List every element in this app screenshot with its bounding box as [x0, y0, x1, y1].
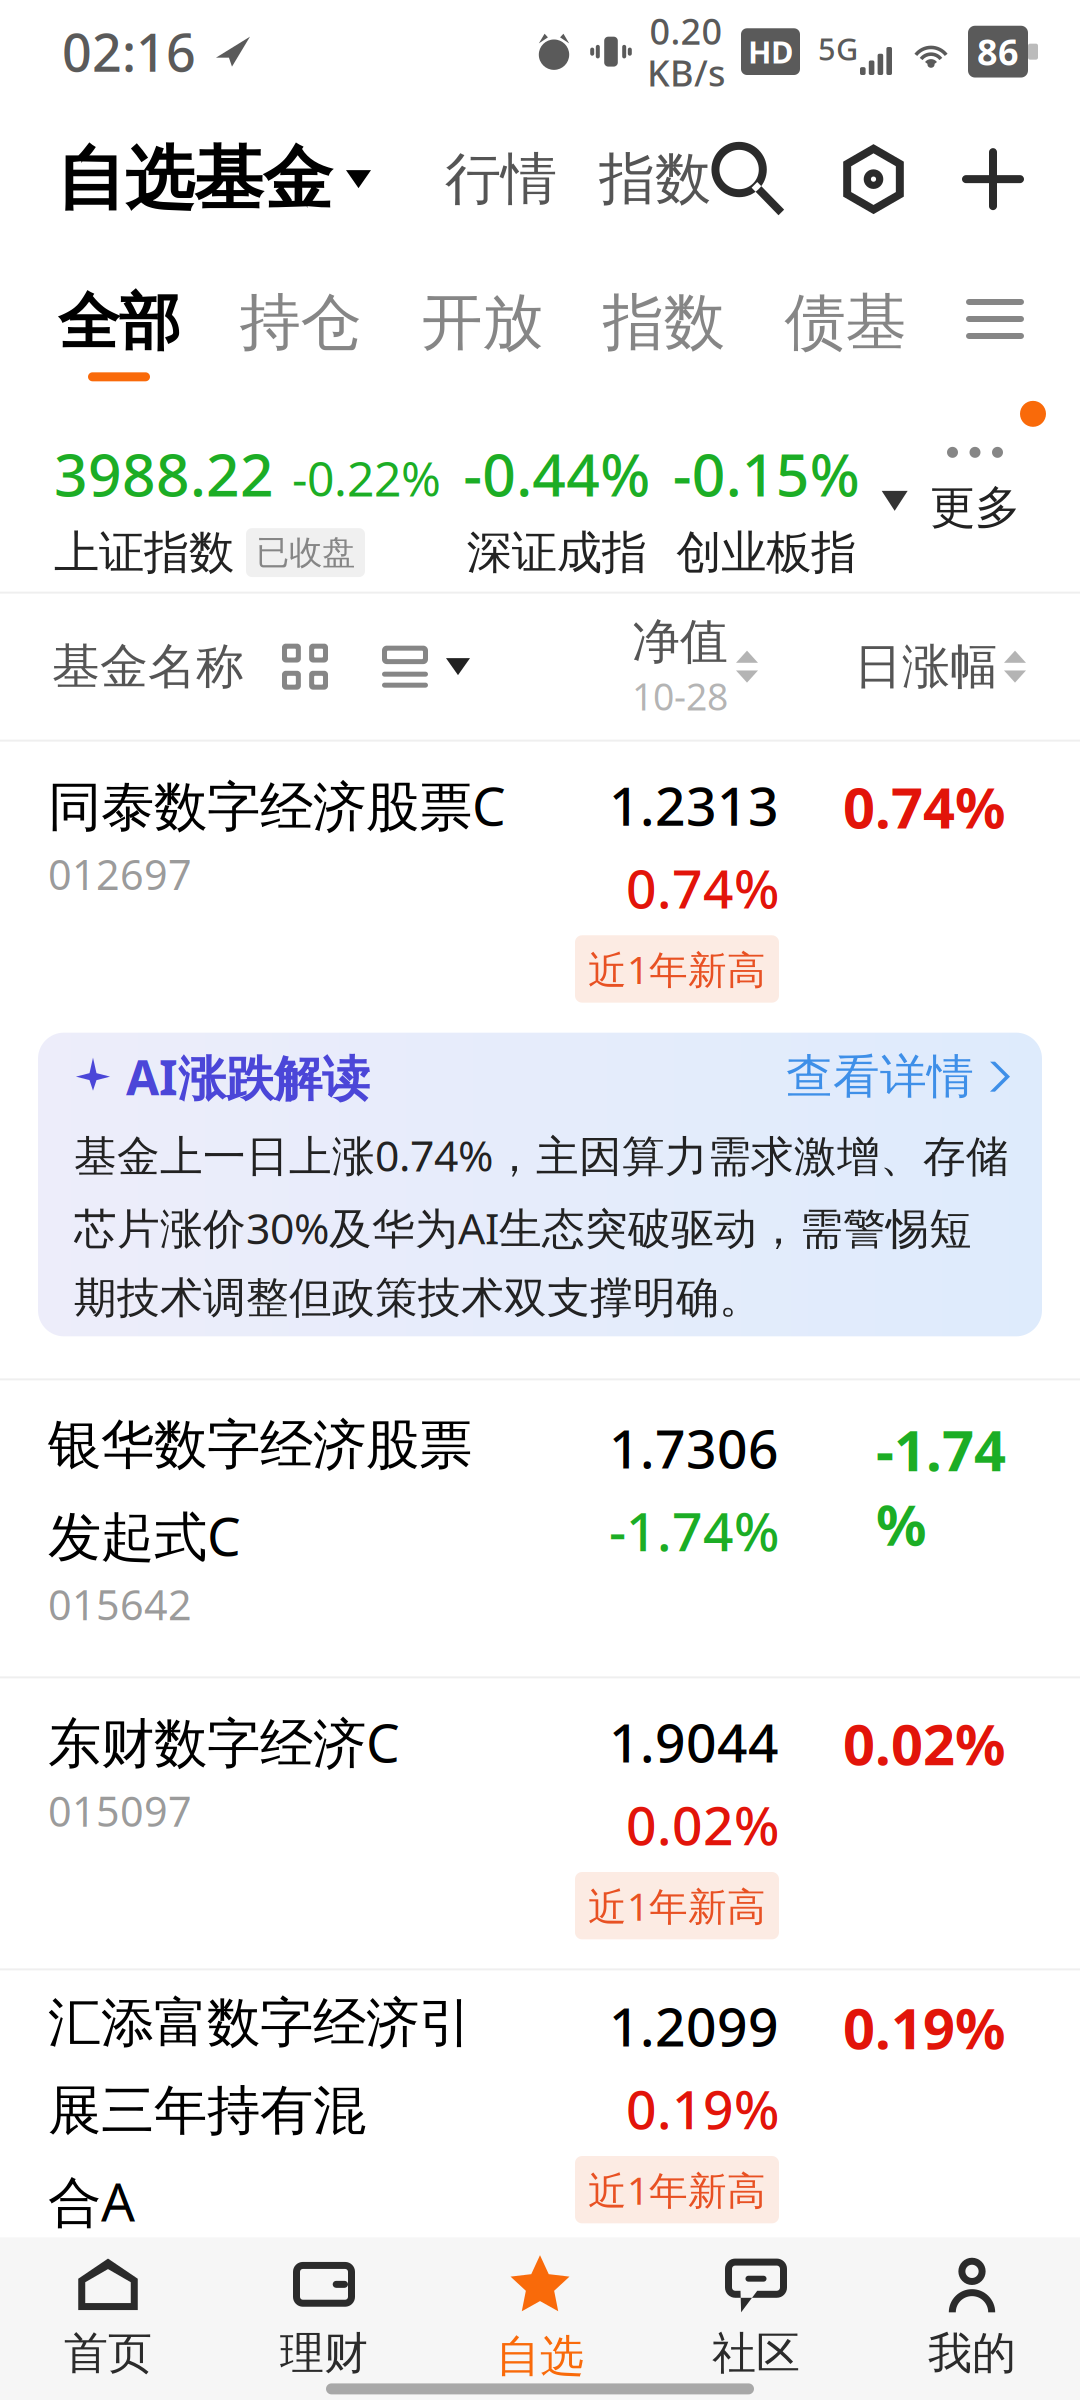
- staticText: 查看详情: [786, 1048, 974, 1105]
- button[interactable]: 行情: [445, 145, 557, 214]
- staticText: 1.7306: [609, 1412, 779, 1483]
- button[interactable]: 银华数字经济股票 发起式C: [0, 1380, 1080, 1676]
- button[interactable]: 债基: [784, 285, 906, 360]
- staticText: 0.20: [649, 7, 722, 55]
- button[interactable]: 首页: [0, 2256, 216, 2380]
- button[interactable]: 自选: [432, 2253, 648, 2383]
- staticText: 创业板指: [676, 525, 856, 580]
- staticText: -0.22%: [292, 446, 441, 510]
- staticText: -0.44%: [463, 435, 650, 513]
- staticText: AI涨跌解读: [126, 1045, 370, 1109]
- staticText: 0.74%: [843, 770, 1006, 844]
- staticText: 首页: [64, 2326, 152, 2380]
- staticText: 同泰数字经济股票C: [48, 770, 506, 840]
- button[interactable]: 日涨幅: [854, 637, 1026, 696]
- staticText: 1.2313: [609, 770, 779, 840]
- button[interactable]: 搜索: [711, 142, 785, 216]
- staticText: 指数: [599, 145, 711, 214]
- button[interactable]: 更多分类: [966, 285, 1024, 339]
- button[interactable]: 添加自选: [962, 148, 1024, 210]
- staticText: 0.74%: [626, 852, 779, 923]
- button[interactable]: 排序方式: [382, 646, 470, 688]
- staticText: 基金上一日上涨0.74%，主因算力需求激增、存储 芯片涨价30%及华为AI生态突…: [74, 1127, 1009, 1324]
- staticText: 015642: [48, 1577, 192, 1632]
- button[interactable]: 指数: [603, 285, 725, 360]
- staticText: 行情: [445, 145, 557, 214]
- staticText: 近1年新高: [588, 2164, 766, 2215]
- button[interactable]: 更多: [930, 435, 1020, 535]
- button[interactable]: 查看详情: [786, 1048, 1010, 1105]
- staticText: 1.2099: [609, 1990, 779, 2061]
- staticText: 持仓: [240, 285, 362, 360]
- staticText: 上证指数: [54, 525, 234, 580]
- staticText: 社区: [712, 2326, 800, 2380]
- button[interactable]: 理财: [216, 2256, 432, 2380]
- staticText: 理财: [280, 2326, 368, 2380]
- button[interactable]: 自选基金: [56, 137, 371, 222]
- staticText: KB/s: [647, 49, 725, 96]
- staticText: 银华数字经济股票 发起式C: [48, 1412, 472, 1571]
- staticText: 深证成指: [467, 525, 647, 580]
- staticText: 开放: [421, 285, 543, 360]
- staticText: 更多: [930, 480, 1020, 535]
- staticText: -0.15%: [673, 435, 860, 513]
- staticText: 5G: [818, 28, 858, 69]
- staticText: 自选基金: [56, 137, 332, 222]
- staticText: 全部: [58, 285, 180, 360]
- staticText: 0.19%: [843, 1990, 1006, 2065]
- staticText: 净值: [632, 612, 728, 671]
- staticText: 近1年新高: [588, 1880, 766, 1931]
- staticText: 日涨幅: [854, 637, 998, 696]
- button[interactable]: 网格视图: [282, 644, 328, 690]
- staticText: 自选: [496, 2329, 584, 2383]
- staticText: 0.19%: [626, 2073, 779, 2144]
- button[interactable]: 我的: [864, 2256, 1080, 2380]
- staticText: 012697: [48, 846, 192, 901]
- button[interactable]: 社区: [648, 2256, 864, 2380]
- button[interactable]: 开放: [421, 285, 543, 360]
- button[interactable]: 东财数字经济C: [0, 1678, 1080, 1968]
- staticText: 近1年新高: [588, 943, 766, 995]
- staticText: 基金名称: [52, 637, 244, 696]
- staticText: 债基: [784, 285, 906, 360]
- staticText: 015097: [48, 1783, 192, 1838]
- staticText: 0.02%: [626, 1789, 779, 1860]
- staticText: 3988.22: [54, 435, 274, 513]
- staticText: 1.9044: [609, 1706, 779, 1777]
- staticText: -1.74%: [609, 1495, 779, 1566]
- staticText: 汇添富数字经济引 展三年持有混 合A: [48, 1990, 472, 2236]
- staticText: HD: [748, 31, 793, 72]
- staticText: 10-28: [632, 671, 728, 721]
- button[interactable]: 汇添富数字经济引 展三年持有混 合A: [0, 1970, 1080, 2237]
- button[interactable]: 指数: [599, 145, 711, 214]
- staticText: 86: [977, 28, 1019, 75]
- staticText: -1.74%: [876, 1412, 1006, 1561]
- staticText: 我的: [928, 2326, 1016, 2380]
- button[interactable]: 同泰数字经济股票C: [0, 742, 1080, 1033]
- button[interactable]: 持仓: [240, 285, 362, 360]
- staticText: 0.02%: [843, 1706, 1006, 1781]
- button[interactable]: 净值: [632, 612, 758, 721]
- staticText: 指数: [603, 285, 725, 360]
- staticText: 已收盘: [256, 532, 355, 573]
- staticText: 02:16: [62, 17, 196, 86]
- button[interactable]: 设置: [838, 142, 908, 216]
- button[interactable]: 全部: [58, 285, 180, 381]
- staticText: 东财数字经济C: [48, 1706, 400, 1777]
